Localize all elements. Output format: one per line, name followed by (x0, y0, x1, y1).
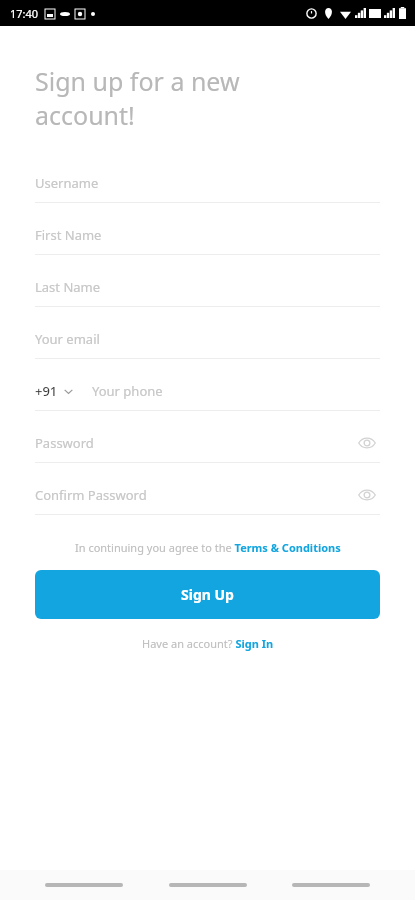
staticText: Have an account? Sign In (142, 636, 274, 651)
button[interactable]: Your email (35, 320, 380, 358)
button[interactable]: Navigation button (169, 883, 247, 887)
staticText: Your phone (92, 382, 163, 400)
button[interactable]: Have an account? Sign In (142, 636, 274, 651)
button[interactable]: +91 (35, 382, 74, 400)
staticText: In continuing you agree to the Terms & C… (75, 540, 341, 555)
button[interactable]: Sign Up (35, 570, 380, 619)
button[interactable]: Your phone (92, 372, 380, 410)
button[interactable]: Navigation button (292, 883, 370, 887)
button[interactable]: First Name (35, 216, 380, 254)
button[interactable]: Last Name (35, 268, 380, 306)
button[interactable]: Navigation button (45, 883, 123, 887)
button[interactable]: Password (35, 424, 380, 462)
button[interactable]: Toggle password visibility (354, 430, 380, 456)
staticText: Sign Up (181, 585, 234, 604)
staticText: First Name (35, 226, 102, 244)
staticText: Confirm Password (35, 486, 147, 504)
button[interactable]: Toggle password visibility (354, 482, 380, 508)
staticText: +91 (35, 382, 58, 400)
staticText: Password (35, 434, 94, 452)
staticText: Your email (35, 330, 100, 348)
staticText: Last Name (35, 278, 101, 296)
staticText: 17:40 (10, 6, 39, 21)
button[interactable]: Confirm Password (35, 476, 380, 514)
staticText: Sign up for a new account! (35, 64, 240, 132)
button[interactable]: Username (35, 164, 380, 202)
staticText: Username (35, 174, 99, 192)
